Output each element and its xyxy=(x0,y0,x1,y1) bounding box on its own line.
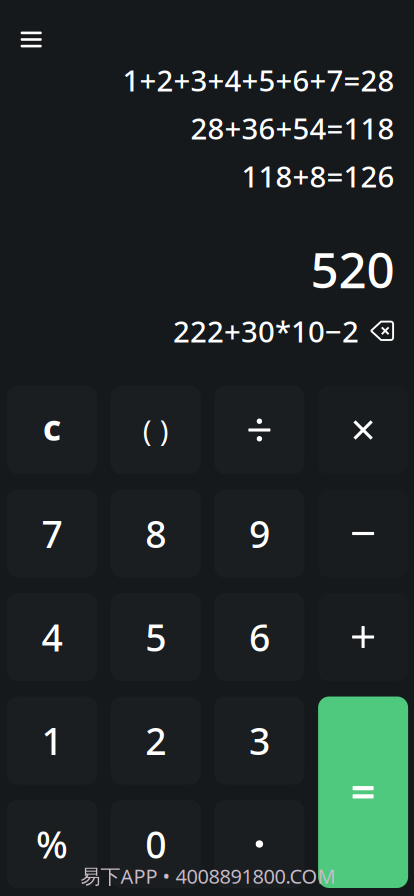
staticText: ( ) xyxy=(143,410,169,449)
button[interactable]: ( ) xyxy=(111,386,201,474)
button[interactable]: 7 xyxy=(7,489,97,577)
staticText: 222+30*10−2 xyxy=(173,311,359,350)
staticText: 118+8=126 xyxy=(241,156,394,195)
staticText: 1+2+3+4+5+6+7=28 xyxy=(122,60,394,99)
button[interactable]: Menu xyxy=(7,15,55,63)
staticText: C xyxy=(43,411,61,449)
staticText: 3 xyxy=(249,716,270,765)
button[interactable]: 0 xyxy=(111,800,201,888)
button[interactable]: 2 xyxy=(111,696,201,784)
staticText: 7 xyxy=(41,509,62,558)
button[interactable]: 8 xyxy=(111,489,201,577)
staticText: % xyxy=(36,819,68,869)
button[interactable]: Divide xyxy=(214,386,304,474)
staticText: 520 xyxy=(310,236,394,302)
staticText: 易下APP • 4008891800.COM xyxy=(80,863,335,889)
button[interactable]: Plus xyxy=(318,593,408,681)
staticText: 5 xyxy=(145,612,166,662)
button[interactable]: Equals xyxy=(318,696,408,888)
button[interactable]: 5 xyxy=(111,593,201,681)
staticText: 8 xyxy=(145,509,166,558)
button[interactable]: 9 xyxy=(214,489,304,577)
button[interactable]: Decimal point xyxy=(214,800,304,888)
button[interactable]: 4 xyxy=(7,593,97,681)
button[interactable]: Minus xyxy=(318,489,408,577)
staticText: 1 xyxy=(41,716,62,765)
staticText: 4 xyxy=(41,612,62,662)
staticText: 6 xyxy=(249,612,270,662)
staticText: 2 xyxy=(145,716,166,765)
button[interactable]: 6 xyxy=(214,593,304,681)
button[interactable]: C xyxy=(7,386,97,474)
button[interactable]: 3 xyxy=(214,696,304,784)
button[interactable]: % xyxy=(7,800,97,888)
button[interactable]: 1 xyxy=(7,696,97,784)
button[interactable]: Backspace xyxy=(362,312,402,350)
button[interactable]: Multiply xyxy=(318,386,408,474)
staticText: 9 xyxy=(249,509,270,558)
staticText: 0 xyxy=(145,819,166,869)
staticText: 28+36+54=118 xyxy=(190,108,394,147)
